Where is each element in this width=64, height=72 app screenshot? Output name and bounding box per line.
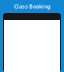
staticText: Class Booking: [14, 3, 50, 10]
